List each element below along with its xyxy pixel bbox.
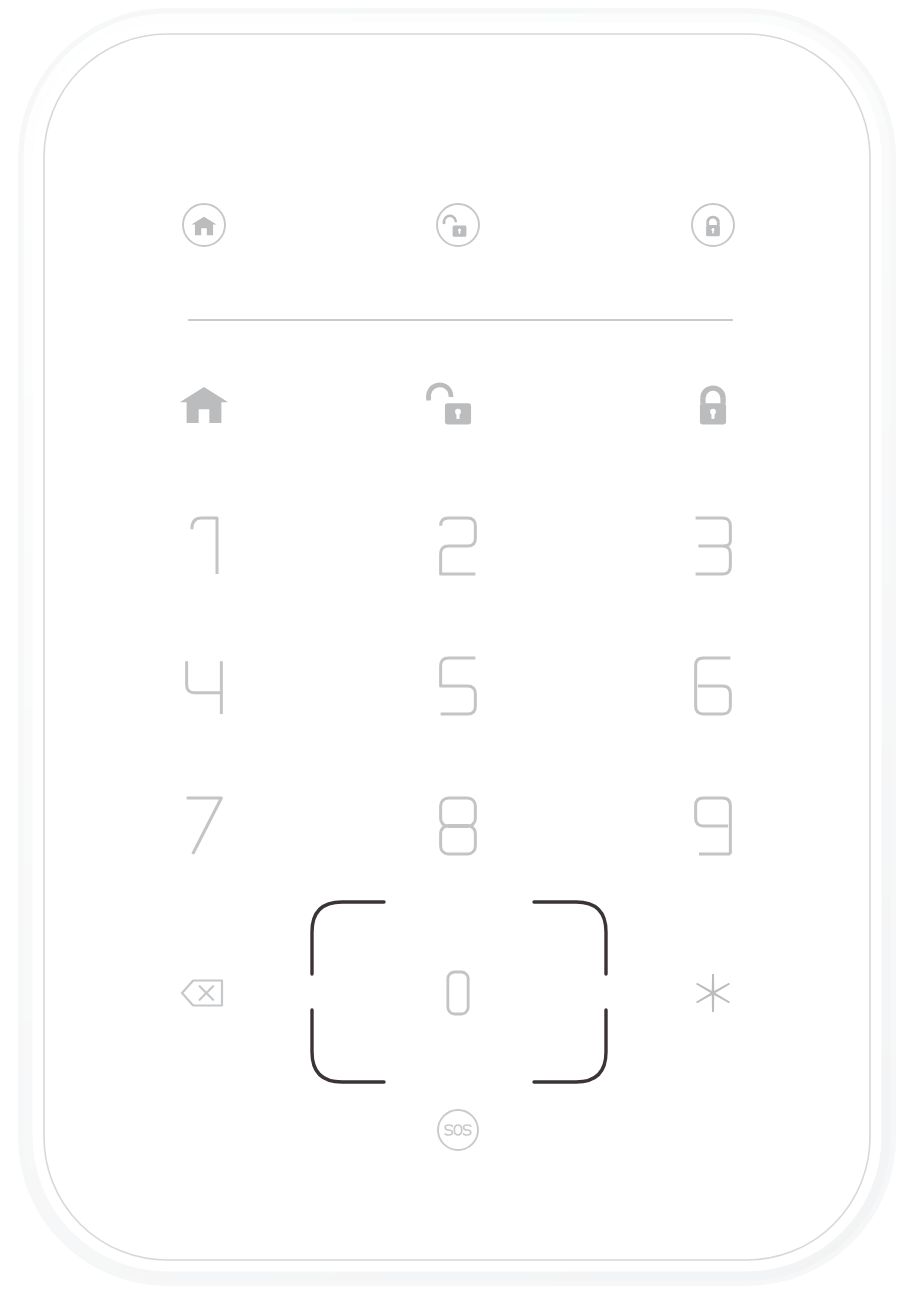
button[interactable]: 7: [129, 766, 279, 886]
button[interactable]: 6: [638, 626, 788, 746]
button[interactable]: Home status: [159, 180, 249, 270]
button[interactable]: Arm home: [134, 350, 274, 460]
button[interactable]: 5: [383, 626, 533, 746]
button[interactable]: Delete: [129, 938, 279, 1048]
button[interactable]: 4: [129, 626, 279, 746]
button[interactable]: 8: [383, 766, 533, 886]
button[interactable]: Disarm: [388, 350, 528, 460]
button[interactable]: Asterisk: [638, 938, 788, 1048]
button[interactable]: Disarmed status: [413, 180, 503, 270]
button[interactable]: 3: [638, 486, 788, 606]
button[interactable]: 2: [383, 486, 533, 606]
button[interactable]: 9: [638, 766, 788, 886]
button[interactable]: Armed status: [668, 180, 758, 270]
button[interactable]: Arm away: [643, 350, 783, 460]
button[interactable]: 1: [129, 486, 279, 606]
button[interactable]: SOS emergency: [413, 1085, 503, 1175]
button[interactable]: 0: [383, 938, 533, 1048]
